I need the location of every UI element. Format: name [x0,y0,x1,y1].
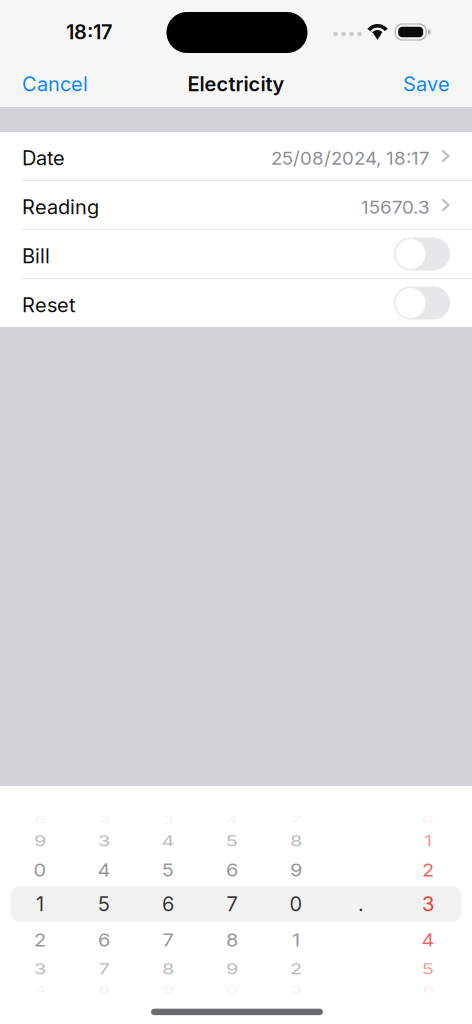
staticText: 4 [161,829,174,853]
staticText: Bill [22,244,50,268]
staticText: 0 [33,858,46,882]
staticText: 2 [34,928,46,952]
staticText: 5 [226,829,238,853]
staticText: 0 [289,892,302,916]
button[interactable]: Reading [0,181,472,229]
staticText: 4 [97,858,110,882]
staticText: 3 [34,957,46,981]
staticText: 2 [290,957,302,981]
staticText: 9 [226,957,238,981]
staticText: 7 [226,892,237,916]
staticText: 5 [162,858,174,882]
staticText: Cancel [22,72,88,96]
staticText: 4 [225,808,238,832]
staticText: Electricity [187,72,284,96]
staticText: 3 [98,829,110,853]
staticText: 8 [98,978,110,1002]
staticText: 1 [36,892,44,916]
staticText: 8 [290,829,302,853]
staticText: 1 [424,829,432,853]
staticText: 9 [290,858,302,882]
staticText: 5 [422,957,434,981]
staticText: 6 [422,978,434,1002]
staticText: 25/08/2024, 18:17 [271,147,430,169]
staticText: 18:17 [66,20,112,44]
staticText: 6 [98,928,110,952]
button[interactable]: Cancel [0,62,472,106]
staticText: 9 [34,829,46,853]
staticText: 8 [226,928,238,952]
staticText: 3 [290,978,302,1002]
staticText: . [358,892,364,916]
staticText: 3 [422,892,434,916]
staticText: 1 [292,928,300,952]
staticText: 4 [421,928,434,952]
staticText: 7 [98,957,109,981]
staticText: 7 [162,928,173,952]
staticText: 4 [33,978,46,1002]
staticText: 9 [162,978,174,1002]
staticText: Save [403,72,450,96]
staticText: 8 [162,957,174,981]
button[interactable]: Bill [0,230,472,278]
button[interactable]: Reset [0,279,472,327]
staticText: 2 [422,858,434,882]
staticText: 3 [162,808,174,832]
staticText: Reading [22,195,99,219]
staticText: 0 [421,808,434,832]
staticText: 6 [226,858,238,882]
staticText: 8 [34,808,46,832]
staticText: 2 [98,808,110,832]
staticText: Reset [22,293,76,317]
staticText: 15670.3 [361,196,430,218]
staticText: Date [22,146,65,170]
staticText: 6 [162,892,174,916]
button[interactable]: Save [0,62,472,106]
staticText: 5 [98,892,110,916]
button[interactable]: Date [0,132,472,180]
staticText: 0 [225,978,238,1002]
